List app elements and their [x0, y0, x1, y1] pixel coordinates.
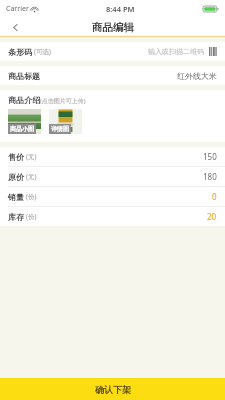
button[interactable]: 详情图 — [49, 109, 82, 134]
button[interactable]: 售价 — [0, 147, 225, 166]
staticText: (可选) — [34, 47, 51, 56]
staticText: 售价 — [8, 152, 24, 162]
button[interactable]: 销量 — [0, 187, 225, 206]
staticText: 8:44 PM — [106, 4, 135, 14]
staticText: 详情图 — [51, 125, 69, 133]
staticText: 商品介绍 — [8, 95, 40, 105]
staticText: 红外线大米 — [177, 71, 217, 81]
staticText: 销量 — [8, 192, 24, 202]
button[interactable]: 条形码 — [0, 42, 225, 61]
staticText: 确认下架 — [95, 384, 131, 395]
button[interactable]: 库存 — [0, 207, 225, 226]
staticText: (元) — [26, 152, 37, 161]
staticText: 输入或扫描二维码 — [148, 47, 204, 56]
staticText: 20 — [207, 211, 217, 222]
staticText: (点击图片可上传) — [40, 97, 86, 105]
staticText: 商品编辑 — [92, 21, 134, 34]
button[interactable]: 确认下架 — [0, 378, 225, 400]
staticText: (份) — [26, 192, 37, 201]
staticText: Carrier — [6, 4, 29, 14]
staticText: 0 — [212, 191, 217, 202]
staticText: 商品标题 — [8, 71, 40, 81]
button[interactable]: 原价 — [0, 167, 225, 186]
staticText: 原价 — [8, 172, 24, 182]
button[interactable]: Back — [0, 18, 30, 37]
staticText: (份) — [26, 212, 37, 221]
staticText: 150 — [203, 151, 217, 162]
staticText: 商品小图 — [10, 125, 34, 133]
button[interactable]: 商品标题 — [0, 66, 225, 85]
staticText: 条形码 — [8, 47, 32, 57]
staticText: 180 — [203, 171, 217, 182]
button[interactable]: 商品小图 — [8, 109, 41, 134]
staticText: 库存 — [8, 212, 24, 222]
staticText: (元) — [26, 172, 37, 181]
